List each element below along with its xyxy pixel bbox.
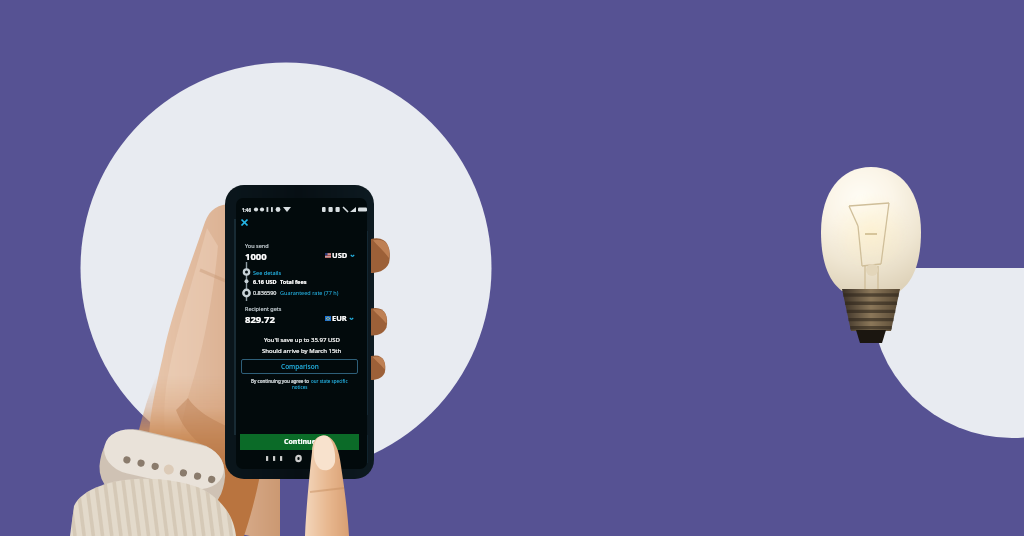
staticText: Should arrive by March 15th	[262, 347, 342, 355]
button[interactable]: Continue	[240, 434, 359, 450]
staticText: 6.16 USD	[253, 278, 277, 285]
staticText: Comparison	[281, 362, 319, 371]
button[interactable]: USD	[325, 250, 355, 260]
staticText: Total fees	[280, 278, 307, 285]
staticText: EUR	[332, 313, 347, 323]
button[interactable]: Recents	[259, 453, 270, 464]
button[interactable]: Back	[328, 453, 339, 464]
staticText: Continue	[284, 437, 316, 447]
button[interactable]: Close	[240, 218, 249, 227]
button[interactable]: Home	[293, 453, 304, 464]
staticText: Recipient gets	[245, 305, 282, 312]
staticText: our state specific	[311, 378, 348, 384]
staticText: You'll save up to 35.97 USD	[264, 336, 340, 344]
button[interactable]: Comparison	[241, 359, 358, 374]
staticText: 829.72	[245, 313, 275, 326]
staticText: Guaranteed rate (77 h)	[280, 289, 339, 296]
button[interactable]: EUR	[325, 313, 354, 323]
staticText: By continuing you agree to	[251, 378, 311, 384]
staticText: See details	[253, 269, 282, 276]
staticText: USD	[332, 250, 348, 260]
staticText: 0.836590	[253, 289, 277, 296]
staticText: You send	[245, 242, 269, 249]
staticText: 1000	[245, 250, 267, 263]
staticText: 1:46	[242, 207, 251, 213]
staticText: notices	[292, 384, 308, 390]
